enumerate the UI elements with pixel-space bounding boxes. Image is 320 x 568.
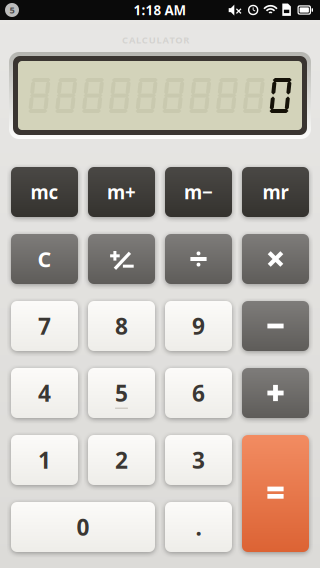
staticText: 6 [192,378,205,408]
button[interactable]: Multiply [242,234,309,284]
button[interactable]: mc [11,167,78,217]
button[interactable]: 9 [165,301,232,351]
staticText: C [37,245,51,273]
staticText: 2 [115,445,128,475]
staticText: 7 [38,311,51,341]
button[interactable]: 6 [165,368,232,418]
button[interactable]: 4 [11,368,78,418]
staticText: 9 [192,311,205,341]
button[interactable]: . [165,502,232,552]
staticText: 8 [115,311,128,341]
button[interactable]: 2 [88,435,155,485]
button[interactable]: 1 [11,435,78,485]
staticText: 1:18 AM [133,1,186,19]
button[interactable]: Divide [165,234,232,284]
button[interactable]: Add [242,368,309,418]
staticText: . [195,512,201,542]
staticText: CALCULATOR [122,34,198,46]
button[interactable]: Equals [242,435,309,552]
button[interactable]: 8 [88,301,155,351]
staticText: 5 [115,378,128,408]
button[interactable]: 0 [11,502,155,552]
button[interactable]: m+ [88,167,155,217]
button[interactable]: 7 [11,301,78,351]
staticText: 0 [76,512,89,542]
button[interactable]: Plus minus [88,234,155,284]
staticText: 5 [9,4,14,16]
staticText: 4 [38,378,51,408]
button[interactable]: m− [165,167,232,217]
button[interactable]: Subtract [242,301,309,351]
staticText: mr [262,180,288,204]
staticText: 1 [38,445,51,475]
button[interactable]: 3 [165,435,232,485]
staticText: m− [184,180,213,204]
button[interactable]: mr [242,167,309,217]
staticText: m+ [107,180,136,204]
staticText: mc [30,180,58,204]
staticText: 3 [192,445,205,475]
button[interactable]: C [11,234,78,284]
button[interactable]: 5 [88,368,155,418]
